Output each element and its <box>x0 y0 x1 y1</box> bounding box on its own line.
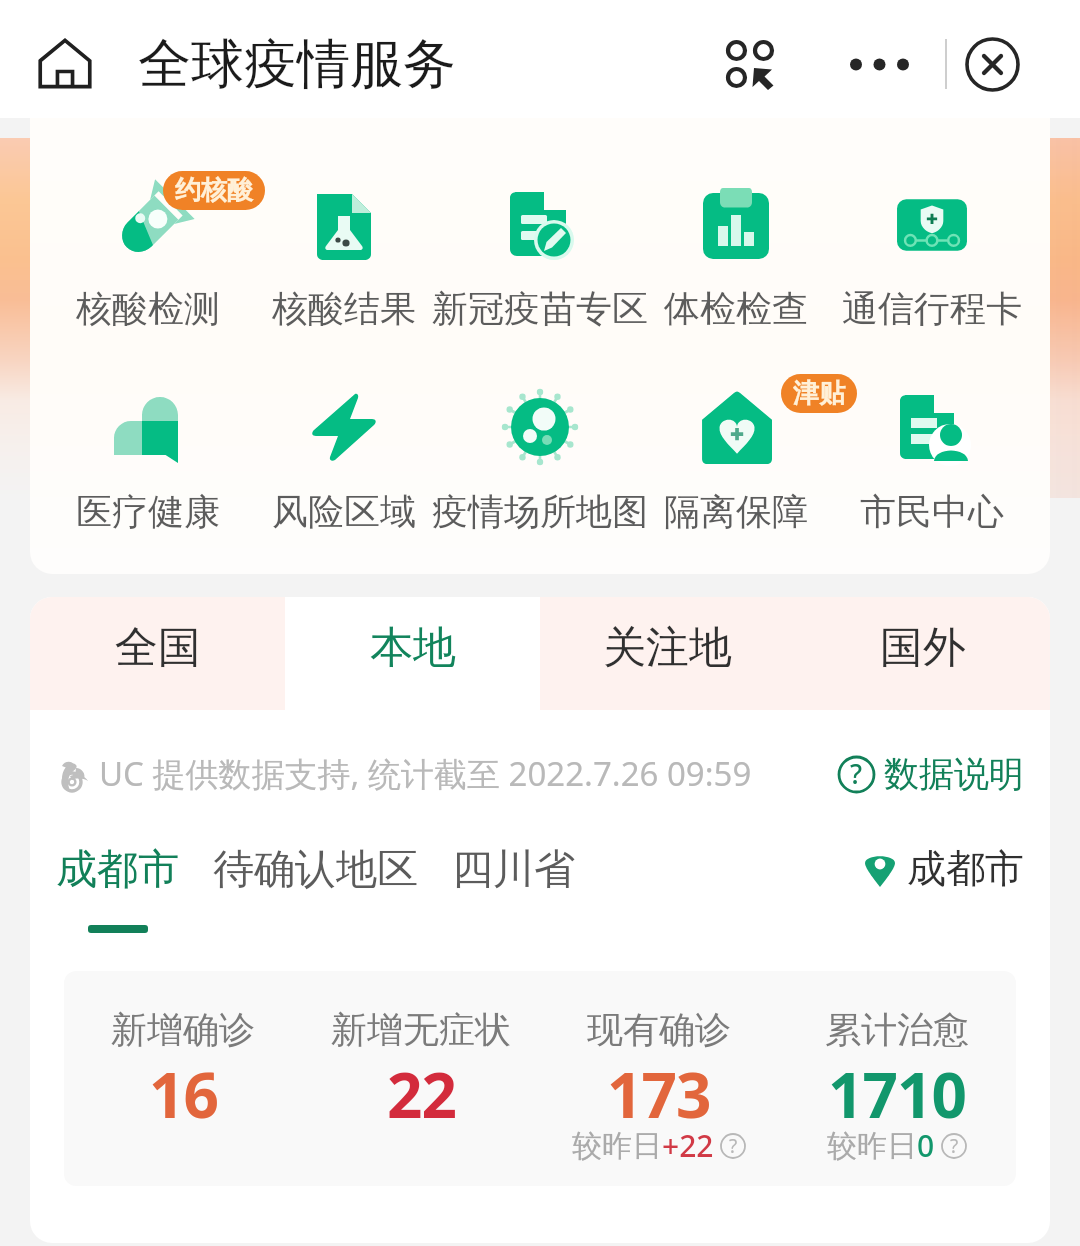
button[interactable]: 成都市 <box>861 844 1024 893</box>
button[interactable]: 新增无症状 <box>302 1007 540 1186</box>
button[interactable]: 核酸结果 <box>246 188 442 331</box>
staticText: 核酸结果 <box>272 286 416 331</box>
button[interactable]: 现有确诊 <box>540 1007 778 1186</box>
staticText: 22 <box>387 1052 456 1136</box>
staticText: 全球疫情服务 <box>138 31 456 98</box>
button[interactable]: 约核酸 <box>50 188 246 331</box>
staticText: 体检检查 <box>664 286 808 331</box>
staticText: 累计治愈 <box>825 1007 969 1052</box>
staticText: 173 <box>607 1052 711 1136</box>
staticText: 1710 <box>828 1052 966 1136</box>
staticText: UC 提供数据支持, 统计截至 2022.7.26 09:59 <box>99 751 752 796</box>
staticText: ? <box>729 1133 738 1159</box>
staticText: 市民中心 <box>860 489 1004 534</box>
button[interactable]: 疫情场所地图 <box>442 391 638 534</box>
button[interactable]: 医疗健康 <box>50 391 246 534</box>
button[interactable]: 关注地 <box>540 597 795 710</box>
button[interactable]: 风险区域 <box>246 391 442 534</box>
staticText: 全国 <box>115 621 201 675</box>
staticText: 较昨日 <box>827 1127 917 1165</box>
button[interactable]: 通信行程卡 <box>834 188 1030 331</box>
button[interactable]: 本地 <box>285 597 540 710</box>
staticText: 关注地 <box>603 621 732 675</box>
button[interactable]: 成都市 <box>56 844 179 933</box>
staticText: 通信行程卡 <box>842 286 1022 331</box>
staticText: 16 <box>149 1052 218 1136</box>
staticText: 医疗健康 <box>76 489 220 534</box>
button[interactable]: 累计治愈 <box>778 1007 1016 1186</box>
staticText: 风险区域 <box>272 489 416 534</box>
staticText: 津贴 <box>793 377 845 410</box>
button[interactable]: Home <box>32 26 98 92</box>
staticText: 数据说明 <box>884 752 1024 796</box>
button[interactable]: 市民中心 <box>834 391 1030 534</box>
button[interactable]: 国外 <box>795 597 1050 710</box>
button[interactable]: More options <box>850 22 921 96</box>
button[interactable]: Close <box>957 21 1028 97</box>
staticText: 本地 <box>370 621 456 675</box>
staticText: 0 <box>917 1125 935 1166</box>
staticText: 疫情场所地图 <box>432 489 648 534</box>
staticText: 约核酸 <box>175 174 253 207</box>
staticText: 成都市 <box>907 844 1024 893</box>
button[interactable]: 四川省 <box>452 844 575 896</box>
button[interactable]: 全国 <box>30 597 285 710</box>
staticText: 国外 <box>880 621 966 675</box>
staticText: ? <box>950 1133 959 1159</box>
staticText: 新增确诊 <box>111 1007 255 1052</box>
button[interactable]: ? <box>838 752 1024 796</box>
button[interactable]: Mini program menu <box>712 17 788 101</box>
staticText: 成都市 <box>56 844 179 896</box>
staticText: 隔离保障 <box>664 489 808 534</box>
button[interactable]: 体检检查 <box>638 188 834 331</box>
button[interactable]: 新冠疫苗专区 <box>442 188 638 331</box>
button[interactable]: 新增确诊 <box>64 1007 302 1186</box>
button[interactable]: 待确认地区 <box>213 844 418 896</box>
staticText: ? <box>850 755 863 792</box>
staticText: 较昨日 <box>572 1127 662 1165</box>
button[interactable]: 津贴 <box>638 391 834 534</box>
staticText: 新增无症状 <box>331 1007 511 1052</box>
staticText: 现有确诊 <box>587 1007 731 1052</box>
staticText: 新冠疫苗专区 <box>432 286 648 331</box>
staticText: +22 <box>662 1125 714 1166</box>
staticText: 核酸检测 <box>76 286 220 331</box>
